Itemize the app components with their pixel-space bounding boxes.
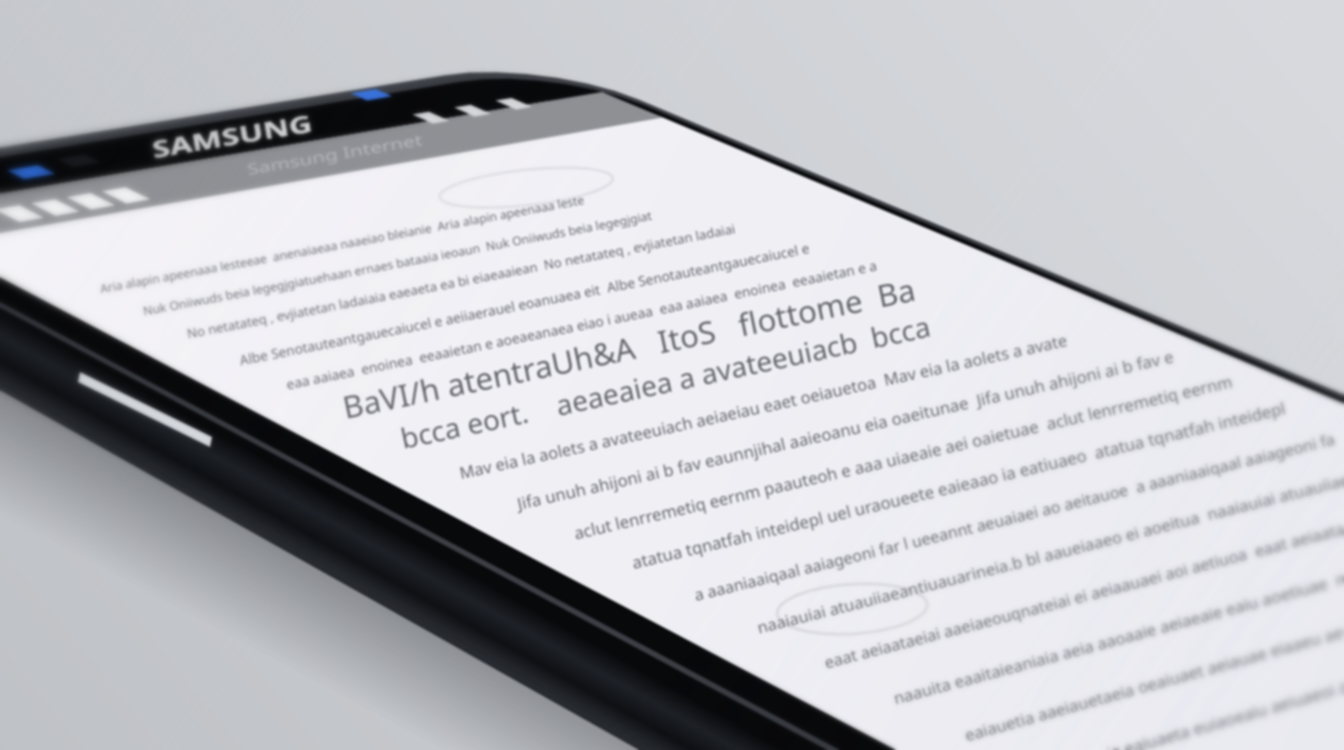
- button[interactable]: Related link: [740, 560, 960, 630]
- button[interactable]: Article headline: [330, 360, 1010, 470]
- button[interactable]: Samsung Internet address bar: [150, 96, 370, 140]
- button[interactable]: Article paragraph: [100, 240, 1000, 410]
- button[interactable]: Search suggestion chip: [430, 160, 660, 214]
- button[interactable]: Status bar icons: [14, 178, 124, 220]
- button[interactable]: Article body text: [430, 470, 1310, 720]
